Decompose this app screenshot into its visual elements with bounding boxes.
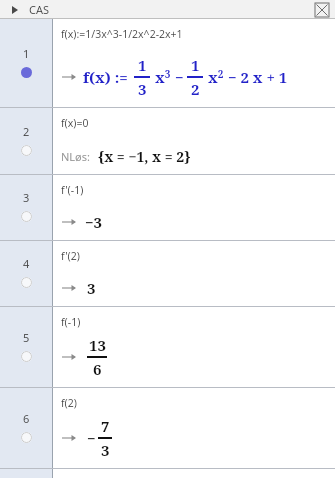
staticText: f'(-1) xyxy=(61,183,84,197)
staticText: −3 xyxy=(85,212,103,232)
staticText: 1 xyxy=(138,55,147,75)
button[interactable] xyxy=(0,469,335,478)
staticText: 3 xyxy=(138,79,147,99)
button[interactable]: Row 5 marker xyxy=(0,307,52,387)
staticText: − xyxy=(175,67,184,87)
staticText: 3 xyxy=(87,278,96,298)
button[interactable]: Row 4 marker xyxy=(0,241,52,306)
staticText: x3 xyxy=(155,67,171,87)
staticText: 7 xyxy=(101,416,110,436)
staticText: CAS xyxy=(29,2,50,17)
staticText: − 2 x + 1 xyxy=(228,67,288,87)
staticText: f(x) := xyxy=(83,67,128,87)
staticText: f(x)=0 xyxy=(61,116,89,130)
staticText: 2 xyxy=(191,79,200,99)
button[interactable]: Row 2 marker xyxy=(0,108,335,174)
staticText: 13 xyxy=(89,335,106,355)
button[interactable]: Row 3 marker xyxy=(0,175,52,240)
button[interactable]: Close CAS view xyxy=(315,3,329,17)
staticText: 6 xyxy=(93,359,102,379)
staticText: 6 xyxy=(23,411,30,426)
button[interactable]: Row 5 marker xyxy=(0,307,335,387)
staticText: 3 xyxy=(23,190,30,205)
button[interactable]: Row 3 marker xyxy=(0,175,335,240)
button[interactable]: Row 4 marker xyxy=(0,241,335,306)
staticText: 2 xyxy=(23,124,30,139)
staticText: {x = −1, x = 2} xyxy=(98,147,191,166)
staticText: 4 xyxy=(23,256,30,271)
button[interactable]: Expand CAS view xyxy=(8,3,22,17)
staticText: x2 xyxy=(208,67,224,87)
staticText: f(-1) xyxy=(61,315,81,329)
button[interactable]: Row 1 marker xyxy=(0,19,335,107)
staticText: − xyxy=(87,428,96,448)
staticText: 5 xyxy=(23,330,30,345)
staticText: NLøs: xyxy=(61,149,90,164)
staticText: f(2) xyxy=(61,396,77,410)
button[interactable]: Row 2 marker xyxy=(0,108,52,174)
staticText: f(x):=1/3x^3-1/2x^2-2x+1 xyxy=(61,27,183,41)
button[interactable]: Row 6 marker xyxy=(0,388,335,468)
button[interactable]: Row 1 marker xyxy=(0,19,52,107)
staticText: 3 xyxy=(101,440,110,460)
button[interactable]: Row 6 marker xyxy=(0,388,52,468)
staticText: 1 xyxy=(191,55,200,75)
staticText: f'(2) xyxy=(61,249,80,263)
staticText: 1 xyxy=(23,46,30,61)
